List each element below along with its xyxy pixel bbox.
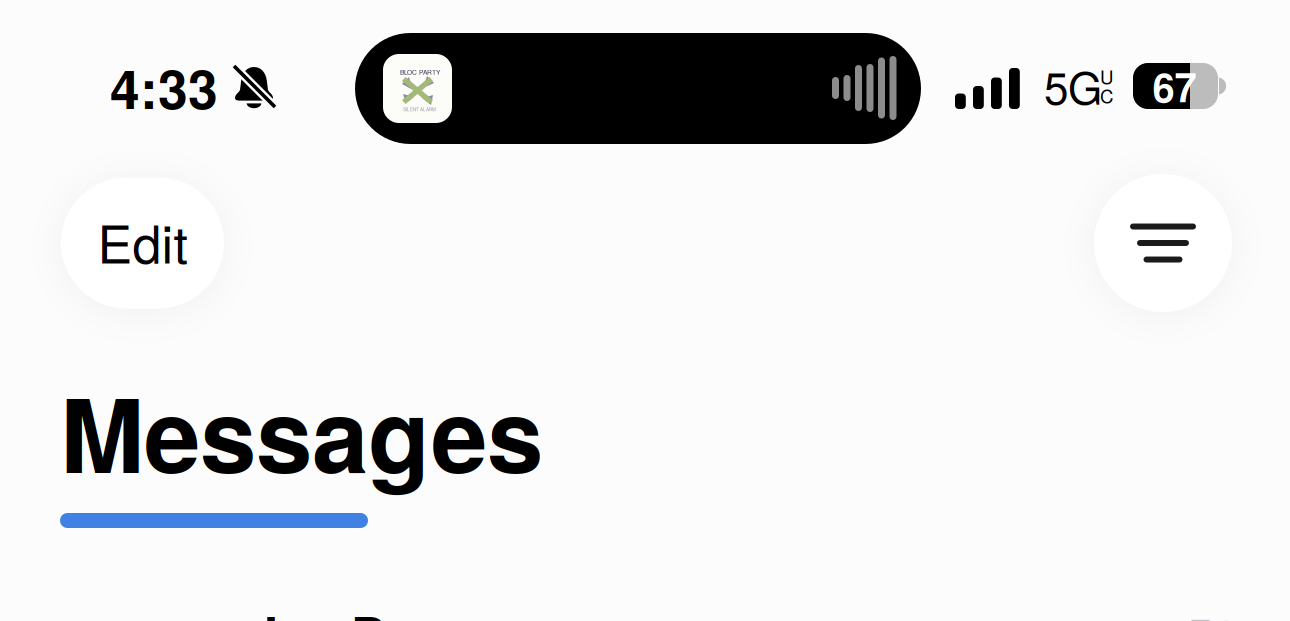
staticText: U bbox=[1100, 63, 1113, 90]
staticText: Ian Doe bbox=[264, 597, 447, 621]
staticText: Fri bbox=[1188, 604, 1230, 621]
staticText: BLOC PARTY bbox=[400, 67, 440, 76]
staticText: Edit bbox=[97, 204, 187, 278]
staticText: C bbox=[1100, 82, 1113, 109]
staticText: 4:33 bbox=[110, 49, 218, 125]
staticText: 5G bbox=[1044, 54, 1102, 117]
button[interactable]: Edit bbox=[61, 177, 224, 308]
staticText: SILENT ALARM bbox=[403, 106, 436, 113]
staticText: 67 bbox=[1152, 57, 1196, 115]
staticText: Messages bbox=[60, 359, 543, 504]
button[interactable]: Filter conversations bbox=[1094, 174, 1232, 312]
button[interactable]: Ian Doe bbox=[0, 597, 1290, 621]
